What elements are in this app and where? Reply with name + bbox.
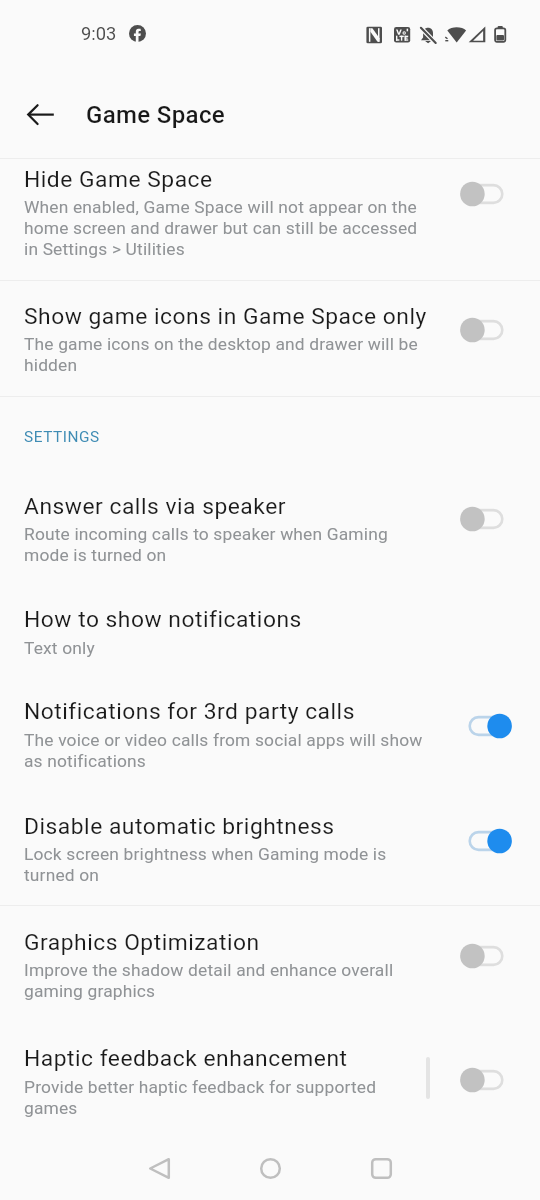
button[interactable]: Toggle off bbox=[458, 940, 514, 972]
button[interactable] bbox=[0, 906, 540, 1020]
staticText: games bbox=[24, 1097, 78, 1118]
button[interactable] bbox=[0, 159, 540, 280]
staticText: Show game icons in Game Space only bbox=[24, 303, 427, 330]
button[interactable]: Back bbox=[15, 88, 67, 140]
button[interactable] bbox=[0, 585, 540, 672]
staticText: as notifications bbox=[24, 750, 147, 771]
button[interactable]: Recents bbox=[353, 1140, 409, 1196]
button[interactable]: Toggle off bbox=[458, 314, 514, 346]
staticText: Graphics Optimization bbox=[24, 929, 260, 956]
staticText: in Settings > Utilities bbox=[24, 238, 185, 259]
staticText: Provide better haptic feedback for suppo… bbox=[24, 1076, 377, 1097]
button[interactable] bbox=[0, 790, 540, 904]
button[interactable]: Home bbox=[242, 1140, 298, 1196]
staticText: 9:03 bbox=[81, 23, 117, 45]
button[interactable] bbox=[0, 1022, 540, 1130]
staticText: The game icons on the desktop and drawer… bbox=[24, 333, 418, 354]
staticText: gaming graphics bbox=[24, 980, 156, 1001]
button[interactable]: Toggle off bbox=[458, 178, 514, 210]
staticText: turned on bbox=[24, 864, 100, 885]
staticText: Text only bbox=[24, 637, 95, 658]
staticText: Answer calls via speaker bbox=[24, 493, 286, 520]
button[interactable]: Toggle off bbox=[458, 1064, 514, 1096]
button[interactable]: Toggle off bbox=[458, 503, 514, 535]
staticText: The voice or video calls from social app… bbox=[24, 729, 423, 750]
button[interactable]: Toggle on bbox=[458, 710, 514, 742]
staticText: Improve the shadow detail and enhance ov… bbox=[24, 959, 394, 980]
staticText: Lock screen brightness when Gaming mode … bbox=[24, 843, 387, 864]
staticText: Haptic feedback enhancement bbox=[24, 1045, 348, 1072]
staticText: Route incoming calls to speaker when Gam… bbox=[24, 523, 388, 544]
staticText: Disable automatic brightness bbox=[24, 813, 335, 840]
button[interactable]: Back bbox=[131, 1140, 187, 1196]
staticText: Hide Game Space bbox=[24, 166, 213, 193]
button[interactable] bbox=[0, 470, 540, 580]
staticText: home screen and drawer but can still be … bbox=[24, 217, 418, 238]
staticText: When enabled, Game Space will not appear… bbox=[24, 196, 417, 217]
button[interactable] bbox=[0, 676, 540, 786]
staticText: Notifications for 3rd party calls bbox=[24, 698, 355, 725]
button[interactable] bbox=[0, 281, 540, 396]
button[interactable]: Toggle on bbox=[458, 825, 514, 857]
staticText: hidden bbox=[24, 354, 78, 375]
staticText: Game Space bbox=[86, 101, 226, 129]
staticText: How to show notifications bbox=[24, 606, 302, 633]
staticText: SETTINGS bbox=[24, 428, 100, 446]
staticText: mode is turned on bbox=[24, 544, 167, 565]
